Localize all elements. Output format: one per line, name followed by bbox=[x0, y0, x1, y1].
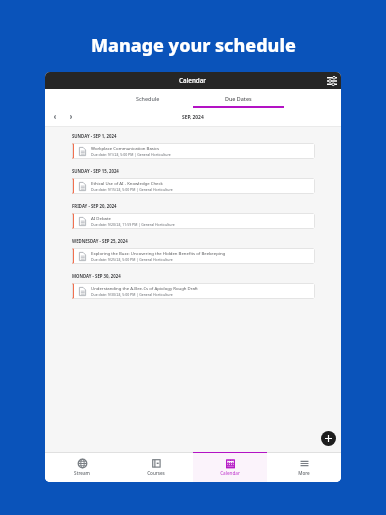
staticText: Understanding the A-Bee-Cs of Apiology R… bbox=[91, 285, 198, 291]
staticText: Schedule bbox=[136, 95, 160, 102]
button[interactable]: Schedule bbox=[102, 89, 193, 108]
button[interactable]: Ethical Use of AI - Knowledge Check bbox=[72, 178, 315, 194]
staticText: FRIDAY - SEP 20, 2024 bbox=[72, 203, 117, 209]
staticText: SEP, 2024 bbox=[182, 114, 204, 121]
button[interactable]: Exploring the Buzz: Uncovering the Hidde… bbox=[72, 248, 315, 264]
staticText: Due date: 9/20/24, 11:59 PM | General Ho… bbox=[91, 222, 175, 227]
button[interactable]: Workplace Communication Basics bbox=[72, 143, 315, 159]
staticText: Due date: 9/15/24, 5:00 PM | General Hor… bbox=[91, 187, 173, 192]
staticText: SUNDAY - SEP 1, 2024 bbox=[72, 133, 117, 139]
button[interactable]: Filter bbox=[323, 72, 340, 89]
staticText: MONDAY - SEP 30, 2024 bbox=[72, 273, 121, 279]
staticText: Due date: 9/30/24, 5:00 PM | General Hor… bbox=[91, 292, 173, 297]
button[interactable]: Stream bbox=[45, 452, 119, 482]
staticText: Due date: 9/1/24, 5:00 PM | General Hort… bbox=[91, 152, 171, 157]
staticText: Workplace Communication Basics bbox=[91, 145, 160, 151]
button[interactable]: Previous month bbox=[49, 111, 61, 123]
button[interactable]: Add bbox=[321, 431, 336, 446]
staticText: Ethical Use of AI - Knowledge Check bbox=[91, 180, 163, 186]
staticText: Calendar bbox=[179, 76, 207, 85]
button[interactable]: Courses bbox=[119, 452, 193, 482]
button[interactable]: Next month bbox=[65, 111, 77, 123]
staticText: AI Debate bbox=[91, 215, 111, 221]
staticText: Stream bbox=[74, 470, 90, 476]
button[interactable]: Calendar bbox=[193, 452, 267, 482]
staticText: Exploring the Buzz: Uncovering the Hidde… bbox=[91, 250, 226, 256]
button[interactable]: AI Debate bbox=[72, 213, 315, 229]
staticText: Manage your schedule bbox=[91, 33, 296, 57]
button[interactable]: Understanding the A-Bee-Cs of Apiology R… bbox=[72, 283, 315, 299]
staticText: Calendar bbox=[220, 470, 240, 476]
staticText: SUNDAY - SEP 15, 2024 bbox=[72, 168, 119, 174]
button[interactable]: More bbox=[267, 452, 341, 482]
button[interactable]: Due Dates bbox=[193, 89, 284, 108]
staticText: Due Dates bbox=[225, 95, 252, 102]
staticText: Courses bbox=[147, 470, 165, 476]
staticText: WEDNESDAY - SEP 25, 2024 bbox=[72, 238, 128, 244]
staticText: More bbox=[298, 470, 310, 476]
staticText: Due date: 9/25/24, 5:00 PM | General Hor… bbox=[91, 257, 173, 262]
